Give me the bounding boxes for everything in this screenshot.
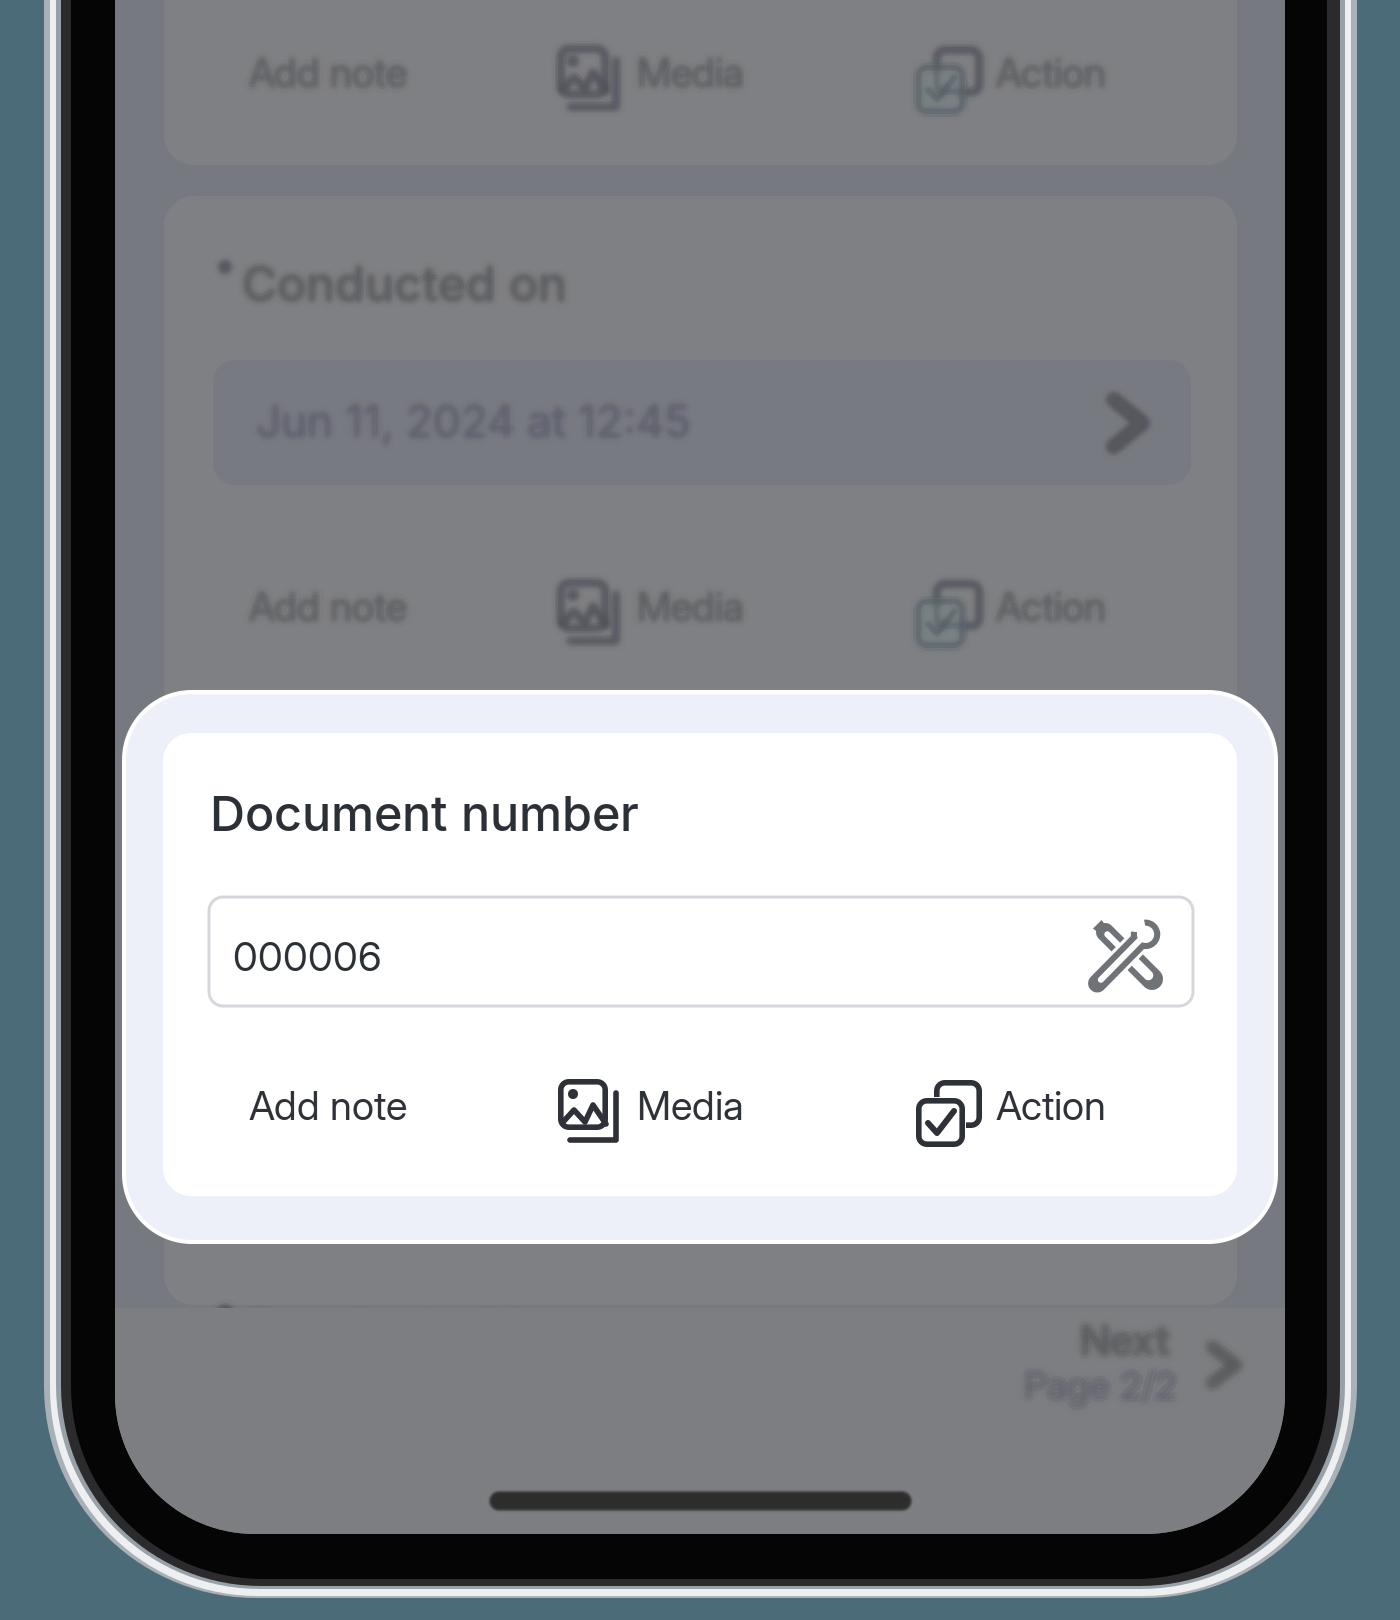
staticText: Add note [249,49,407,97]
button[interactable]: 000006 [209,897,1193,1006]
staticText: Document number [210,784,639,843]
staticText: Action [996,583,1106,631]
staticText: Add note [249,1082,407,1130]
staticText: Action [996,49,1106,97]
button[interactable]: Add note [230,40,430,114]
button[interactable]: Media [558,574,788,648]
button[interactable]: Action [915,1073,1145,1147]
staticText: Media [637,49,744,97]
button[interactable]: Jun 11, 2024 at 12:45 [213,360,1191,485]
staticText: Next [1080,1314,1170,1365]
button[interactable]: Action [915,574,1145,648]
button[interactable]: Media [558,1073,788,1147]
staticText: Jun 11, 2024 at 12:45 [256,394,691,448]
staticText: 000006 [233,932,382,981]
button[interactable]: Next [1020,1292,1280,1412]
staticText: Page 2/2 [1024,1362,1177,1408]
button[interactable]: Add note [230,1073,430,1147]
staticText: Action [996,1082,1106,1130]
staticText: Add note [249,583,407,631]
button[interactable]: Media [558,40,788,114]
button[interactable]: Action [915,40,1145,114]
staticText: Media [637,583,744,631]
button[interactable]: Add note [230,574,430,648]
staticText: Media [637,1082,744,1130]
staticText: Conducted on [242,254,567,313]
